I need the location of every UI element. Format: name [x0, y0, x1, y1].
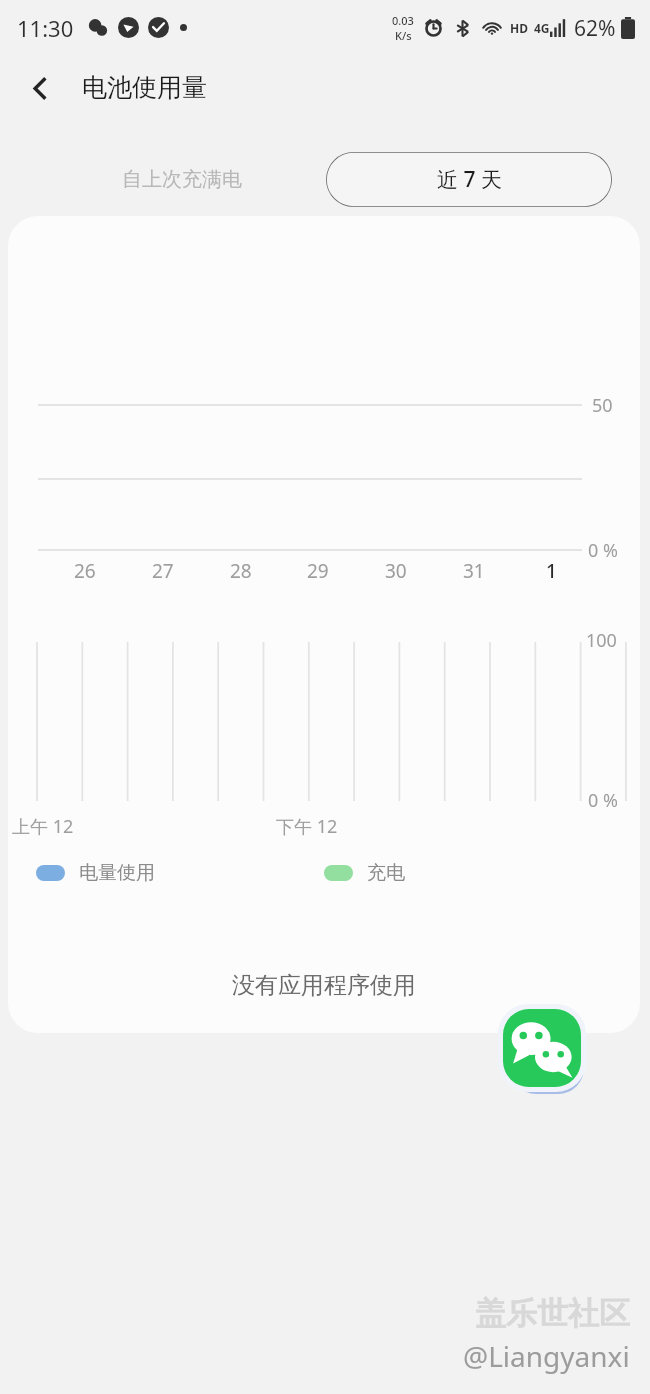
staticText: 盖乐世社区 — [475, 1294, 630, 1333]
staticText: 0 % — [588, 538, 618, 563]
staticText: 1 — [546, 558, 557, 584]
staticText: 近 7 天 — [437, 165, 502, 194]
staticText: 11:30 — [17, 13, 74, 43]
button[interactable]: 自上次充满电 — [104, 155, 260, 204]
staticText: 自上次充满电 — [122, 167, 242, 192]
staticText: 62% — [574, 14, 616, 43]
staticText: 50 — [592, 393, 613, 418]
staticText: 100 — [586, 628, 617, 653]
staticText: 31 — [463, 558, 485, 584]
staticText: 29 — [307, 558, 329, 584]
staticText: 电量使用 — [79, 861, 155, 885]
staticText: 28 — [230, 558, 252, 584]
staticText: 下午 12 — [276, 814, 338, 839]
button[interactable]: 近 7 天 — [326, 152, 612, 207]
staticText: 电池使用量 — [82, 72, 207, 103]
staticText: K/s — [395, 28, 412, 43]
staticText: 上午 12 — [12, 814, 74, 839]
staticText: 26 — [74, 558, 96, 584]
staticText: 没有应用程序使用 — [8, 971, 640, 1000]
staticText: 4G — [534, 20, 550, 36]
staticText: 0.03 — [392, 13, 414, 28]
staticText: @Liangyanxi — [463, 1337, 630, 1375]
staticText: 27 — [152, 558, 174, 584]
button[interactable]: WeChat — [503, 1009, 581, 1087]
staticText: 充电 — [367, 861, 405, 885]
staticText: 30 — [385, 558, 407, 584]
button[interactable]: Back — [12, 60, 68, 116]
staticText: HD — [510, 20, 528, 36]
staticText: 0 % — [588, 788, 618, 813]
